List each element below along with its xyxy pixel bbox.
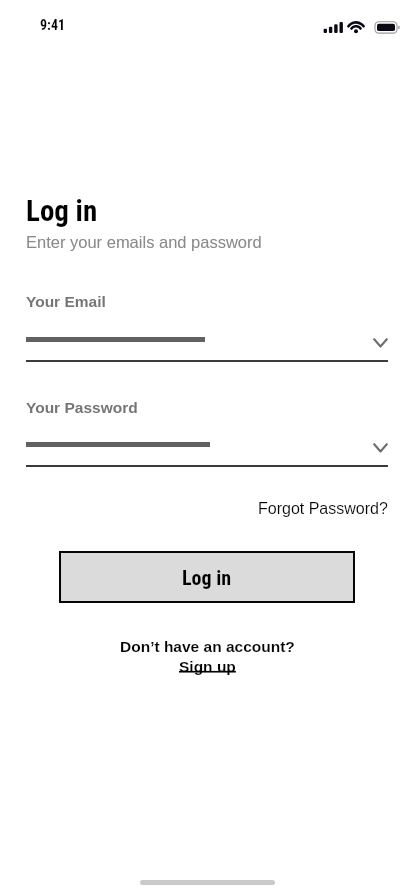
staticText: Your Password — [26, 399, 138, 416]
button[interactable]: Forgot Password? — [258, 500, 388, 518]
button[interactable] — [26, 328, 388, 364]
button[interactable]: Log in — [59, 551, 355, 603]
staticText: Enter your emails and password — [26, 233, 262, 251]
staticText: Don’t have an account? — [120, 638, 295, 655]
staticText: Your Email — [26, 293, 106, 310]
staticText: Log in — [26, 194, 98, 228]
staticText: Log in — [182, 566, 232, 589]
staticText: 9:41 — [40, 17, 66, 33]
button[interactable] — [26, 433, 388, 469]
button[interactable]: Sign up — [179, 658, 236, 675]
